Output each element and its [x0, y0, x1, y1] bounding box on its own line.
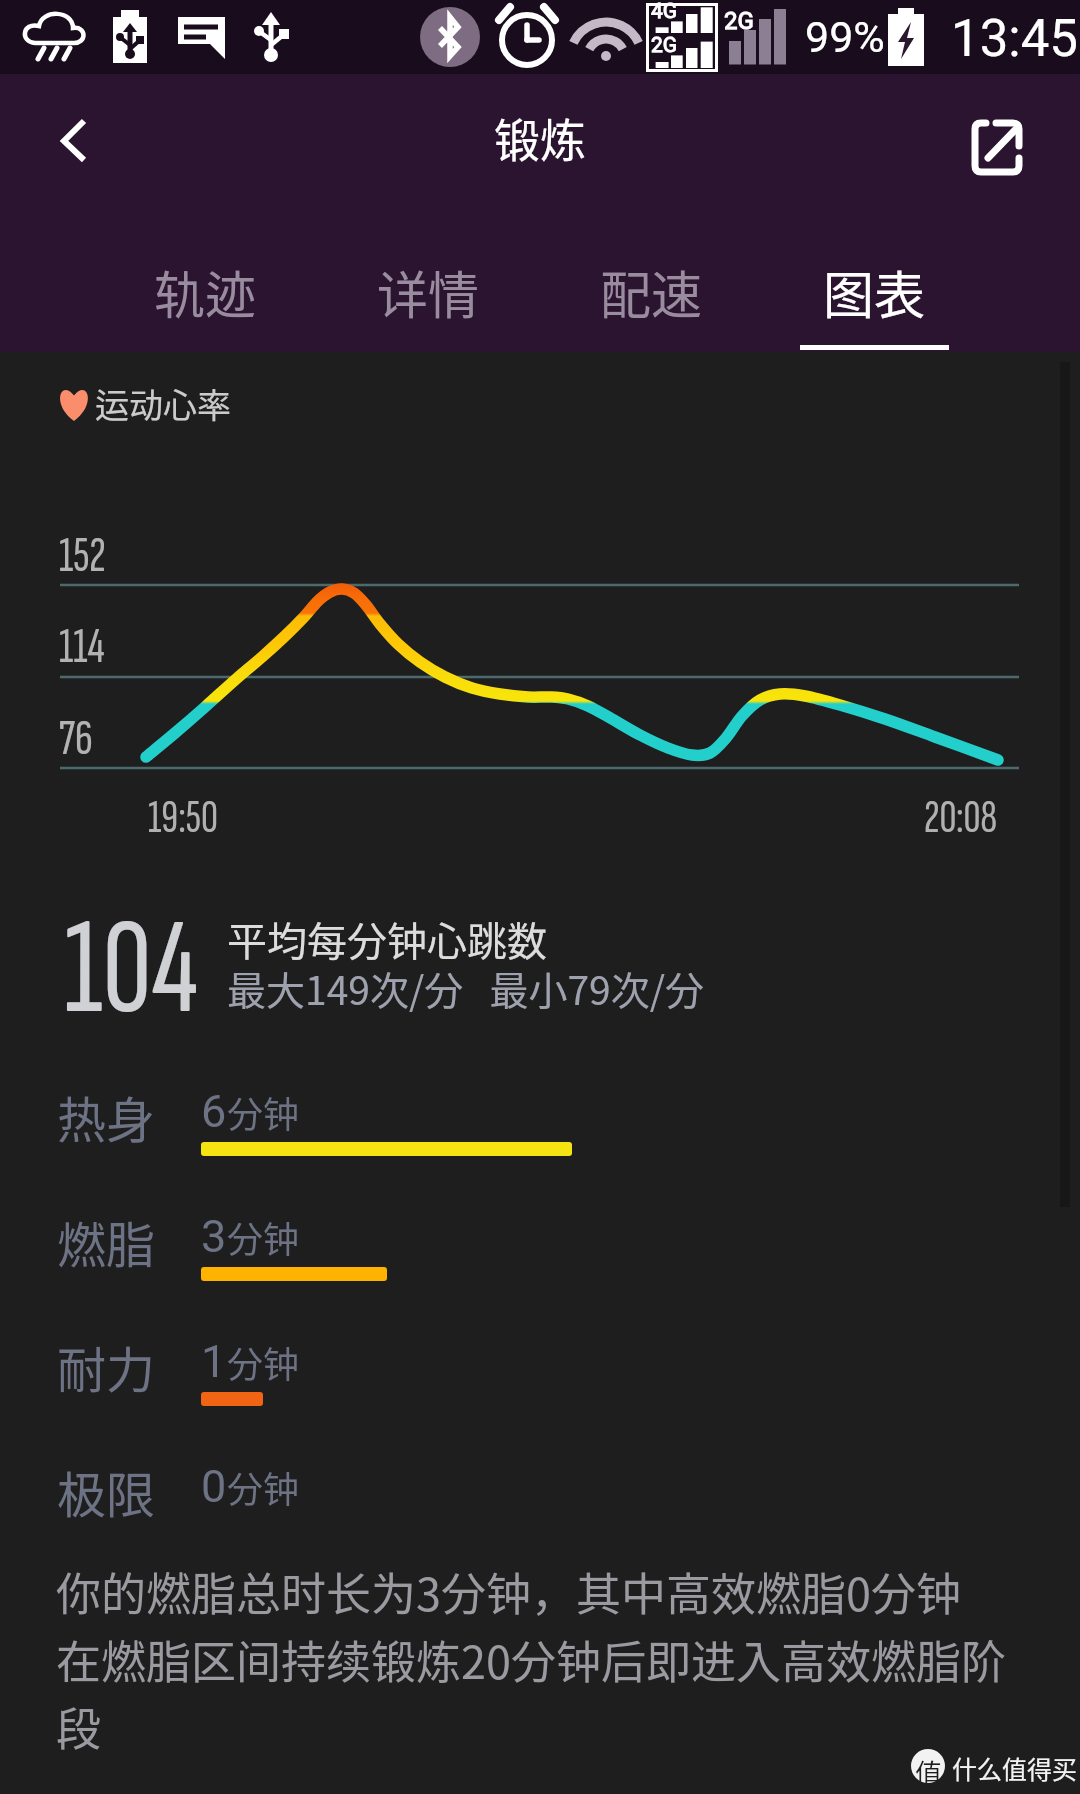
button[interactable]: Back: [24, 94, 124, 190]
staticText: 2G: [651, 33, 678, 58]
staticText: 104: [64, 889, 198, 1052]
staticText: 13:45: [951, 9, 1079, 69]
staticText: 19:50: [148, 790, 218, 846]
staticText: 99%: [805, 12, 885, 62]
staticText: 燃脂: [57, 1206, 156, 1277]
staticText: 配速: [600, 255, 703, 329]
staticText: 最大149次/分 最小79次/分: [227, 960, 705, 1016]
staticText: 轨迹: [154, 255, 257, 329]
staticText: 3: [201, 1210, 227, 1263]
button[interactable]: 轨迹: [94, 210, 317, 352]
button[interactable]: 详情: [317, 210, 540, 352]
staticText: 分钟: [227, 1336, 300, 1388]
staticText: 6: [201, 1085, 227, 1138]
staticText: 图表: [823, 255, 926, 329]
staticText: 耐力: [57, 1331, 156, 1402]
staticText: 152: [59, 526, 106, 586]
staticText: 热身: [57, 1081, 156, 1152]
button[interactable]: Share: [950, 96, 1046, 188]
staticText: 2G: [724, 7, 754, 35]
button[interactable]: 配速: [540, 210, 763, 352]
staticText: 分钟: [227, 1211, 300, 1263]
staticText: 分钟: [227, 1086, 300, 1138]
staticText: 极限: [57, 1456, 156, 1527]
staticText: 76: [59, 709, 93, 769]
staticText: 4G: [651, 0, 678, 24]
staticText: 1: [201, 1335, 227, 1388]
staticText: 你的燃脂总时长为3分钟，其中高效燃脂0分钟 在燃脂区间持续锻炼20分钟后即进入高…: [56, 1559, 1031, 1759]
staticText: 锻炼: [494, 104, 586, 171]
staticText: 20:08: [924, 790, 998, 846]
staticText: 平均每分钟心跳数: [227, 910, 547, 968]
staticText: 114: [59, 617, 105, 677]
staticText: 详情: [377, 255, 480, 329]
staticText: 值: [915, 1753, 942, 1792]
staticText: 0: [201, 1460, 227, 1513]
button[interactable]: 图表: [763, 210, 986, 352]
staticText: 什么值得买: [952, 1750, 1078, 1786]
staticText: 运动心率: [95, 379, 231, 428]
staticText: 分钟: [227, 1461, 300, 1513]
